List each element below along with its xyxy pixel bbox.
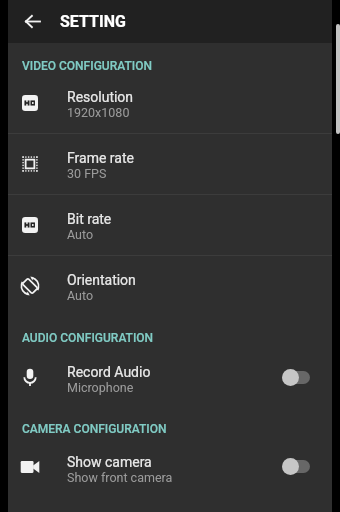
button[interactable]: Toggle Show camera xyxy=(272,445,332,491)
staticText: Microphone xyxy=(67,380,134,395)
staticText: Auto xyxy=(67,288,94,303)
button[interactable]: Toggle Record Audio xyxy=(272,358,332,399)
staticText: Show front camera xyxy=(67,470,173,485)
button[interactable]: Frame rate xyxy=(8,134,332,194)
button[interactable]: Orientation xyxy=(8,256,332,316)
button[interactable]: Resolution xyxy=(8,73,332,133)
button[interactable]: Bit rate xyxy=(8,195,332,255)
staticText: Resolution xyxy=(67,89,134,105)
button[interactable]: Record Audio xyxy=(8,358,332,399)
button[interactable]: Back xyxy=(11,0,54,43)
staticText: Bit rate xyxy=(67,211,112,227)
staticText: AUDIO CONFIGURATION xyxy=(22,331,154,345)
staticText: CAMERA CONFIGURATION xyxy=(22,422,167,436)
button[interactable]: Show camera xyxy=(8,445,332,491)
staticText: 1920x1080 xyxy=(67,105,130,120)
staticText: VIDEO CONFIGURATION xyxy=(22,59,152,73)
staticText: Frame rate xyxy=(67,150,134,166)
staticText: Orientation xyxy=(67,272,136,288)
staticText: Auto xyxy=(67,227,94,242)
staticText: SETTING xyxy=(60,12,126,31)
staticText: Record Audio xyxy=(67,364,151,380)
staticText: Show camera xyxy=(67,454,152,470)
staticText: 30 FPS xyxy=(67,166,107,181)
